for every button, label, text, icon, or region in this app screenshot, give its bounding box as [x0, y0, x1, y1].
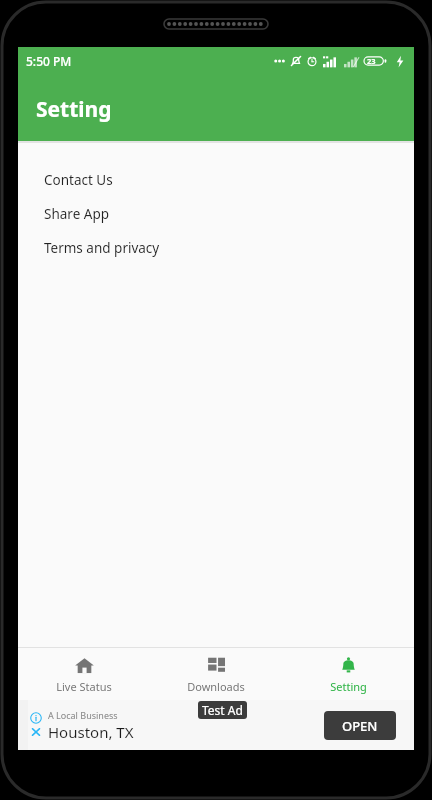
button[interactable]: Close ad [30, 726, 42, 738]
staticText: 5:50 PM [26, 53, 72, 69]
staticText: Live Status [56, 679, 112, 694]
staticText: A Local Business [48, 709, 118, 721]
button[interactable]: Share App [18, 197, 414, 231]
button[interactable]: Ad info [28, 700, 410, 750]
staticText: 23 [367, 56, 376, 66]
button[interactable]: Ad info [30, 712, 42, 724]
button[interactable]: Contact Us [18, 163, 414, 197]
staticText: Setting [330, 679, 367, 694]
staticText: Downloads [187, 679, 245, 694]
staticText: Test Ad [202, 702, 243, 718]
button[interactable]: OPEN [324, 711, 396, 740]
staticText: Share App [44, 205, 109, 223]
staticText: Houston, TX [48, 722, 134, 742]
staticText: Contact Us [44, 171, 113, 189]
button[interactable]: Downloads [150, 648, 282, 700]
button[interactable]: Terms and privacy [18, 231, 414, 265]
staticText: Terms and privacy [44, 239, 160, 257]
button[interactable]: Live Status [18, 648, 150, 700]
staticText: Setting [36, 95, 112, 124]
button[interactable]: Setting [282, 648, 414, 700]
staticText: OPEN [342, 717, 378, 735]
